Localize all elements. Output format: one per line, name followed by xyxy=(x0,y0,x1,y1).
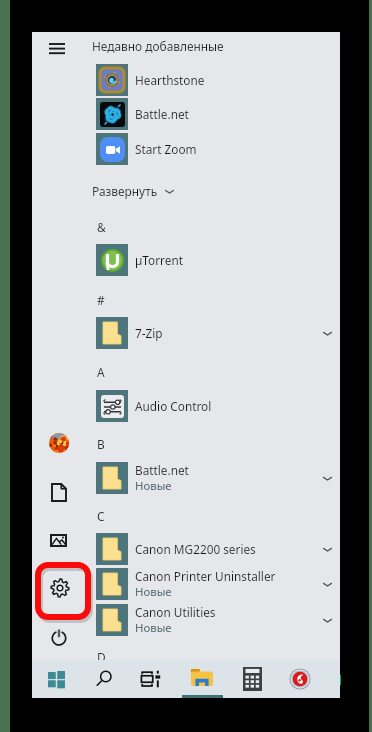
button[interactable]: Развернуть xyxy=(88,181,192,201)
button[interactable]: Account xyxy=(35,421,82,465)
button[interactable]: Search xyxy=(81,660,127,698)
button[interactable]: Documents xyxy=(35,470,82,514)
staticText: & xyxy=(97,219,106,235)
button[interactable]: Calculator xyxy=(229,660,275,698)
button[interactable]: File Explorer xyxy=(179,660,225,698)
button[interactable]: D xyxy=(89,649,340,665)
staticText: Canon Utilities xyxy=(135,604,216,620)
staticText: µTorrent xyxy=(135,252,183,268)
staticText: D xyxy=(97,649,106,665)
button[interactable]: A xyxy=(89,364,340,380)
button[interactable]: Battle.net xyxy=(89,461,340,495)
button[interactable]: Canon MG2200 series xyxy=(89,532,340,566)
button[interactable]: µTorrent xyxy=(89,243,340,277)
button[interactable]: Menu xyxy=(41,32,73,64)
staticText: Hearthstone xyxy=(135,72,205,88)
button[interactable]: Power xyxy=(35,615,82,659)
button[interactable]: & xyxy=(89,219,340,235)
staticText: A xyxy=(97,364,105,380)
staticText: Недавно добавленные xyxy=(92,38,224,54)
staticText: Battle.net xyxy=(135,106,189,122)
staticText: Battle.net xyxy=(135,462,189,478)
staticText: Audio Control xyxy=(135,398,212,414)
staticText: Canon Printer Uninstaller xyxy=(135,568,276,584)
staticText: C xyxy=(97,508,105,524)
staticText: Новые xyxy=(135,620,172,636)
button[interactable]: Hearthstone xyxy=(89,63,340,97)
staticText: Новые xyxy=(135,478,172,494)
staticText: # xyxy=(97,292,105,308)
button[interactable]: # xyxy=(89,292,340,308)
button[interactable]: Pictures xyxy=(35,518,82,562)
staticText: 7-Zip xyxy=(135,325,163,341)
button[interactable]: Task view xyxy=(128,660,174,698)
staticText: Start Zoom xyxy=(135,141,197,157)
button[interactable]: Audio Control xyxy=(89,389,340,423)
staticText: Новые xyxy=(135,584,172,600)
button[interactable]: Settings xyxy=(32,559,88,617)
button[interactable]: C xyxy=(89,508,340,524)
staticText: Canon MG2200 series xyxy=(135,541,256,557)
button[interactable]: IObit xyxy=(277,660,323,698)
button[interactable]: Start xyxy=(33,660,79,698)
button[interactable]: Start Zoom xyxy=(89,132,340,166)
button[interactable]: 7-Zip xyxy=(89,316,340,350)
button[interactable]: Canon Utilities xyxy=(89,603,340,637)
button[interactable]: B xyxy=(89,436,340,452)
button[interactable]: Battle.net xyxy=(89,97,340,131)
staticText: Развернуть xyxy=(92,183,158,199)
button[interactable]: Canon Printer Uninstaller xyxy=(89,567,340,601)
staticText: B xyxy=(97,436,105,452)
